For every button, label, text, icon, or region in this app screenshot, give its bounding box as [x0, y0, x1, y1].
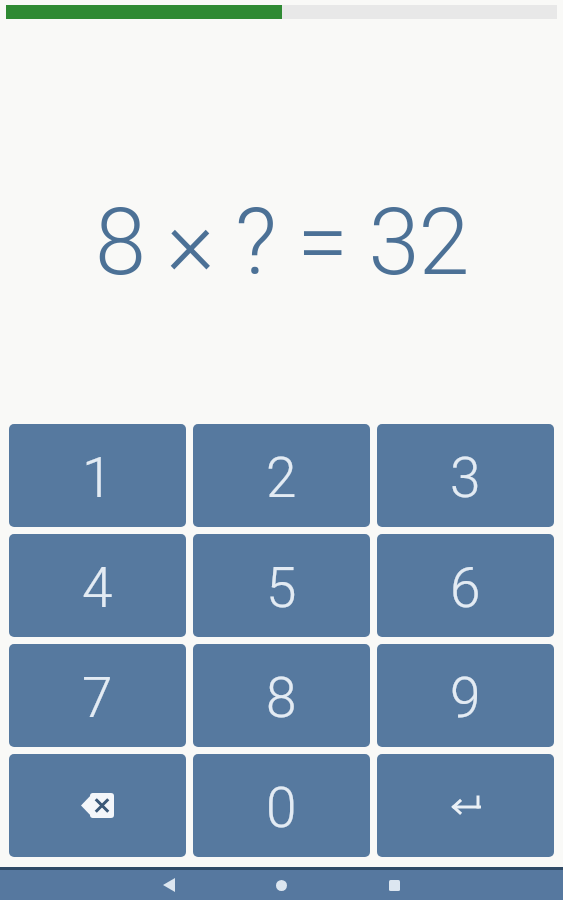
- button[interactable]: 8: [193, 644, 370, 747]
- staticText: 2: [266, 446, 297, 510]
- staticText: 8: [266, 666, 297, 730]
- button[interactable]: 5: [193, 534, 370, 637]
- button[interactable]: 9: [377, 644, 554, 747]
- button[interactable]: 2: [193, 424, 370, 527]
- button[interactable]: 1: [9, 424, 186, 527]
- button[interactable]: 3: [377, 424, 554, 527]
- staticText: 6: [450, 556, 481, 620]
- staticText: 3: [450, 446, 481, 510]
- button[interactable]: [140, 870, 198, 900]
- staticText: 5: [266, 556, 297, 620]
- button[interactable]: [9, 754, 186, 857]
- staticText: 0: [266, 776, 297, 840]
- button[interactable]: 7: [9, 644, 186, 747]
- staticText: 7: [82, 666, 113, 730]
- button[interactable]: [365, 870, 423, 900]
- staticText: 1: [82, 446, 113, 510]
- button[interactable]: [252, 870, 311, 900]
- staticText: 8 × ? = 32: [95, 189, 469, 297]
- button[interactable]: 6: [377, 534, 554, 637]
- button[interactable]: [377, 754, 554, 857]
- staticText: 4: [82, 556, 113, 620]
- button[interactable]: 0: [193, 754, 370, 857]
- button[interactable]: 4: [9, 534, 186, 637]
- staticText: 9: [450, 666, 481, 730]
